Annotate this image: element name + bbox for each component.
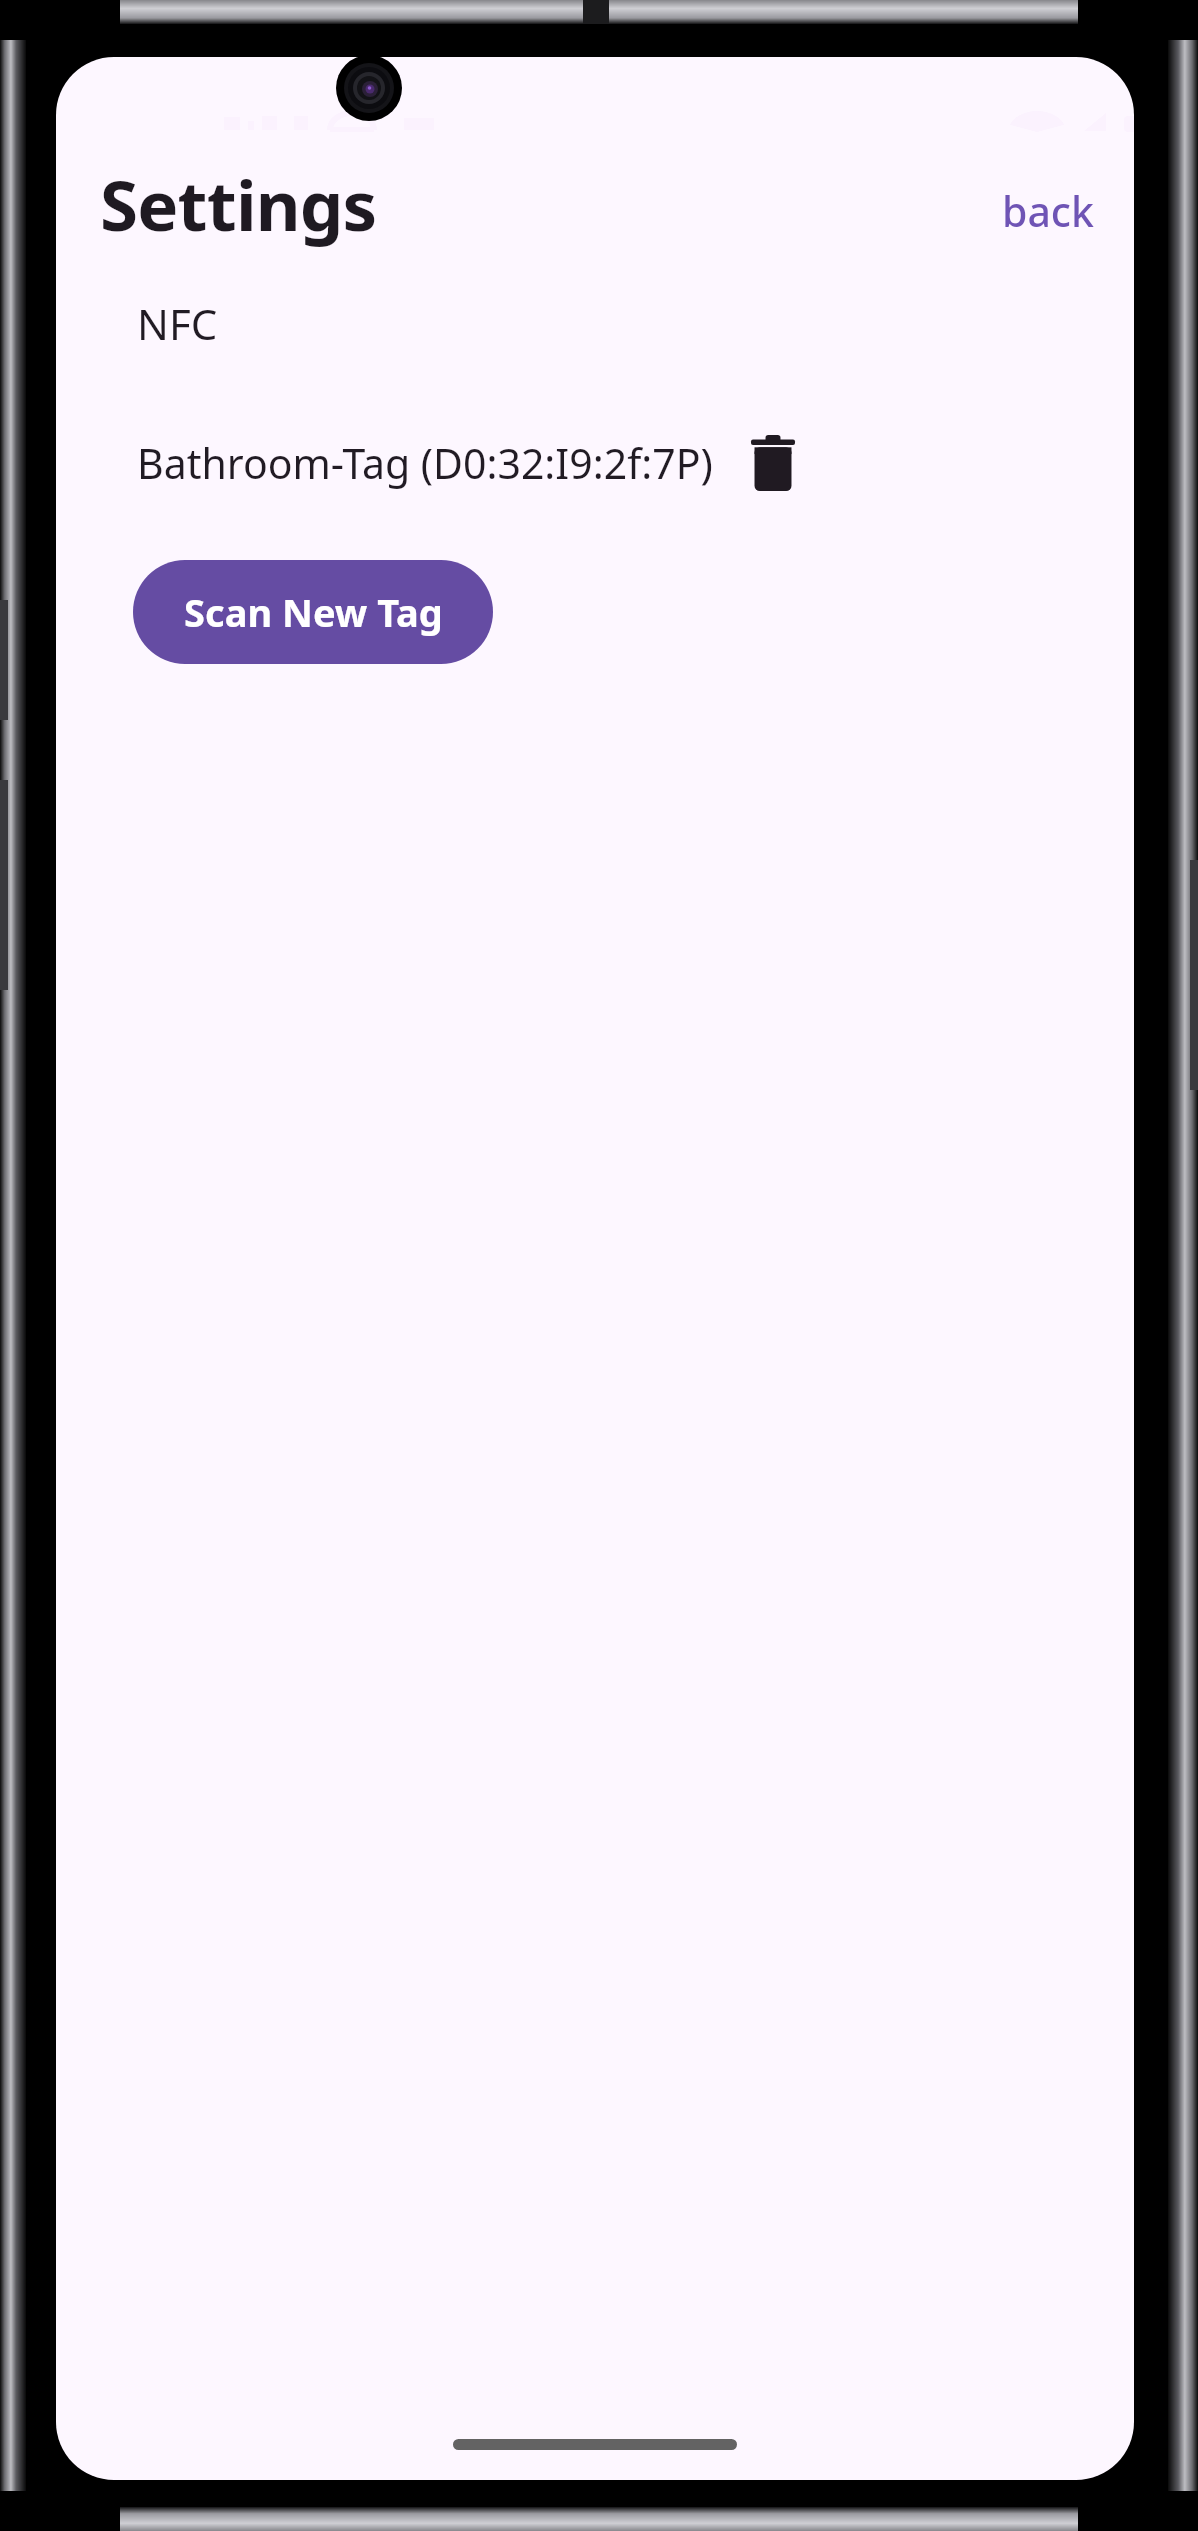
staticText: back	[1002, 183, 1094, 239]
button[interactable]: Scan New Tag	[133, 560, 493, 664]
staticText: Scan New Tag	[184, 586, 443, 638]
staticText: NFC	[137, 295, 218, 352]
button[interactable]: Bathroom-Tag (D0:32:I9:2f:7P)	[137, 429, 807, 497]
button[interactable]: back	[988, 175, 1108, 247]
staticText: Bathroom-Tag (D0:32:I9:2f:7P)	[137, 435, 713, 491]
staticText: Settings	[100, 157, 377, 251]
button[interactable]: Delete tag	[739, 429, 807, 497]
